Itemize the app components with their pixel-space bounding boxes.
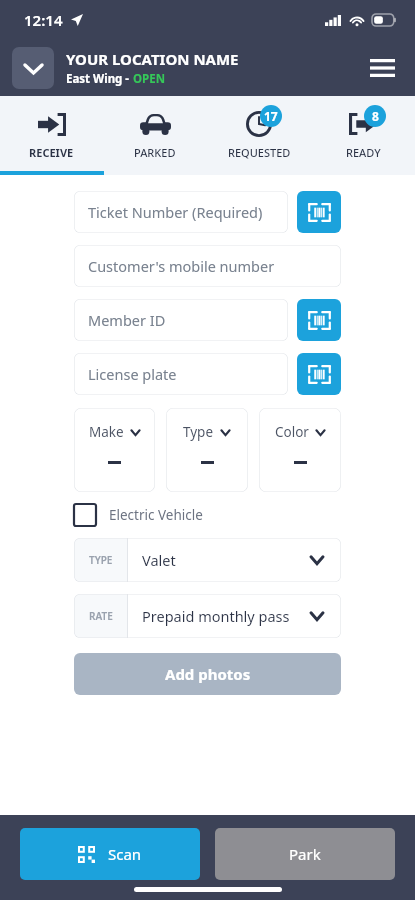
button[interactable]: 8 xyxy=(311,96,415,171)
button[interactable]: Scan barcode xyxy=(297,353,341,395)
button[interactable]: Menu xyxy=(361,47,403,89)
button[interactable]: Scan xyxy=(20,828,200,880)
button[interactable]: Member ID xyxy=(74,299,288,341)
staticText: Prepaid monthly pass xyxy=(142,606,309,626)
staticText: Make xyxy=(89,423,124,441)
button[interactable]: Type xyxy=(166,408,248,492)
button[interactable]: RECEIVE xyxy=(0,96,103,171)
staticText: OPEN xyxy=(133,71,166,87)
button[interactable]: Ticket Number (Required) xyxy=(74,191,288,233)
staticText: Member ID xyxy=(88,310,166,330)
staticText: Electric Vehicle xyxy=(109,506,203,524)
button[interactable]: TYPE xyxy=(74,538,341,582)
staticText: 17 xyxy=(264,108,278,124)
button[interactable]: Change location xyxy=(12,47,54,89)
staticText: REQUESTED xyxy=(228,145,291,160)
staticText: RATE xyxy=(89,609,113,623)
staticText: READY xyxy=(346,145,381,160)
staticText: Add photos xyxy=(165,664,251,684)
button[interactable]: Customer's mobile number xyxy=(74,245,341,287)
staticText: Color xyxy=(275,423,309,441)
button[interactable]: Scan barcode xyxy=(297,191,341,233)
button[interactable]: RATE xyxy=(74,594,341,638)
button[interactable]: Scan barcode xyxy=(297,299,341,341)
button[interactable]: Color xyxy=(259,408,341,492)
staticText: TYPE xyxy=(89,553,113,567)
button[interactable]: Make xyxy=(74,408,155,492)
button[interactable]: Park xyxy=(215,828,395,880)
staticText: Customer's mobile number xyxy=(88,256,275,276)
button[interactable]: License plate xyxy=(74,353,288,395)
staticText: 8 xyxy=(372,108,379,124)
button[interactable]: PARKED xyxy=(103,96,207,171)
staticText: License plate xyxy=(88,364,177,384)
staticText: Type xyxy=(183,423,214,441)
button[interactable]: Electric Vehicle xyxy=(74,504,341,526)
staticText: RECEIVE xyxy=(29,145,74,160)
button[interactable]: 17 xyxy=(207,96,311,171)
button[interactable]: Add photos xyxy=(74,653,341,695)
staticText: Valet xyxy=(142,550,309,570)
staticText: Park xyxy=(289,844,321,864)
staticText: PARKED xyxy=(134,145,176,160)
staticText: East Wing - xyxy=(66,71,133,87)
staticText: Scan xyxy=(108,844,142,864)
staticText: Ticket Number (Required) xyxy=(88,202,263,222)
staticText: 12:14 xyxy=(24,10,63,30)
staticText: YOUR LOCATION NAME xyxy=(66,49,239,69)
